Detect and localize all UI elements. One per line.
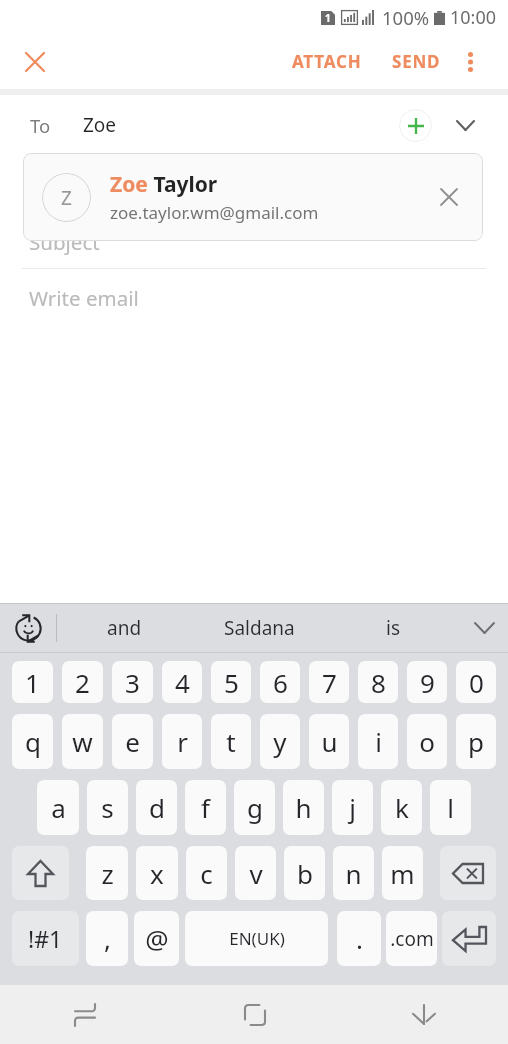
staticText: i xyxy=(375,724,382,759)
button[interactable]: p xyxy=(456,714,496,769)
button[interactable]: Expand recipients xyxy=(444,104,486,146)
button[interactable]: SEND xyxy=(383,38,450,85)
button[interactable]: 0 xyxy=(456,661,496,703)
staticText: t xyxy=(226,724,236,759)
staticText: and xyxy=(107,615,142,641)
button[interactable]: s xyxy=(87,780,128,835)
staticText: ATTACH xyxy=(292,50,362,73)
button[interactable]: w xyxy=(62,714,103,769)
button[interactable]: @ xyxy=(134,911,179,966)
button[interactable]: 4 xyxy=(162,661,202,703)
staticText: To xyxy=(30,113,51,138)
staticText: j xyxy=(349,790,356,825)
staticText: 5 xyxy=(224,665,239,700)
staticText: h xyxy=(295,790,312,825)
staticText: o xyxy=(419,724,435,759)
staticText: 0 xyxy=(469,665,484,700)
staticText: Subject xyxy=(29,228,100,256)
button[interactable]: 9 xyxy=(407,661,447,703)
button[interactable]: y xyxy=(260,714,300,769)
staticText: SEND xyxy=(392,50,441,73)
staticText: is xyxy=(386,615,401,641)
button[interactable]: Add recipient xyxy=(394,104,436,146)
staticText: .com xyxy=(390,926,434,952)
staticText: Saldana xyxy=(224,615,295,641)
button[interactable]: More options xyxy=(450,42,490,82)
button[interactable]: r xyxy=(162,714,202,769)
staticText: v xyxy=(249,856,263,891)
staticText: . xyxy=(356,921,363,956)
staticText: 6 xyxy=(273,665,288,700)
button[interactable]: q xyxy=(12,714,53,769)
button[interactable]: 1 xyxy=(12,661,53,703)
staticText: 1 xyxy=(325,11,331,25)
button[interactable]: l xyxy=(430,780,471,835)
button[interactable]: Emoji xyxy=(0,604,56,652)
staticText: 3 xyxy=(125,665,140,700)
button[interactable]: 5 xyxy=(211,661,251,703)
staticText: 10:00 xyxy=(450,5,497,30)
button[interactable]: b xyxy=(284,846,325,900)
staticText: r xyxy=(177,724,188,759)
staticText: u xyxy=(321,724,338,759)
staticText: 8 xyxy=(371,665,386,700)
button[interactable]: x xyxy=(136,846,178,900)
button[interactable]: Backspace xyxy=(440,846,496,900)
button[interactable]: v xyxy=(235,846,276,900)
button[interactable]: i xyxy=(358,714,398,769)
button[interactable]: j xyxy=(332,780,373,835)
staticText: w xyxy=(72,724,93,759)
button[interactable]: t xyxy=(211,714,251,769)
button[interactable]: , xyxy=(86,911,128,966)
staticText: 100% xyxy=(382,5,430,30)
button[interactable]: Back xyxy=(339,985,508,1044)
button[interactable]: z xyxy=(86,846,128,900)
button[interactable]: Home xyxy=(170,985,339,1044)
button[interactable]: f xyxy=(185,780,226,835)
staticText: l xyxy=(447,790,454,825)
button[interactable]: Recent apps xyxy=(0,985,170,1044)
button[interactable]: ATTACH xyxy=(283,38,371,85)
button[interactable]: . xyxy=(337,911,381,966)
button[interactable]: is xyxy=(326,604,460,652)
button[interactable]: m xyxy=(382,846,423,900)
button[interactable]: Remove recipient xyxy=(429,177,469,217)
button[interactable]: EN(UK) xyxy=(185,911,328,966)
button[interactable]: Symbols xyxy=(12,911,79,966)
staticText: q xyxy=(25,724,41,759)
staticText: 1 xyxy=(25,665,40,700)
staticText: Zoe xyxy=(83,112,117,138)
button[interactable]: Saldana xyxy=(192,604,326,652)
button[interactable]: More suggestions xyxy=(460,604,508,652)
button[interactable]: g xyxy=(234,780,275,835)
button[interactable]: n xyxy=(333,846,374,900)
button[interactable]: .com xyxy=(386,911,437,966)
staticText: 7 xyxy=(322,665,337,700)
staticText: d xyxy=(149,790,165,825)
button[interactable]: k xyxy=(381,780,422,835)
button[interactable]: d xyxy=(136,780,177,835)
button[interactable]: Shift xyxy=(12,846,69,900)
button[interactable]: c xyxy=(186,846,227,900)
button[interactable]: 7 xyxy=(309,661,349,703)
button[interactable]: Close xyxy=(10,37,59,86)
staticText: p xyxy=(468,724,484,759)
staticText: x xyxy=(150,856,164,891)
button[interactable]: 6 xyxy=(260,661,300,703)
button[interactable]: 2 xyxy=(62,661,103,703)
button[interactable]: o xyxy=(407,714,447,769)
button[interactable]: and xyxy=(57,604,192,652)
staticText: e xyxy=(125,724,140,759)
button[interactable]: u xyxy=(309,714,349,769)
staticText: @ xyxy=(145,921,169,956)
button[interactable]: Z xyxy=(23,153,483,241)
staticText: Taylor xyxy=(148,170,218,199)
button[interactable]: a xyxy=(37,780,79,835)
button[interactable]: e xyxy=(112,714,153,769)
button[interactable]: h xyxy=(283,780,324,835)
staticText: c xyxy=(200,856,213,891)
staticText: k xyxy=(395,790,409,825)
button[interactable]: Enter xyxy=(442,911,496,966)
button[interactable]: 3 xyxy=(112,661,153,703)
button[interactable]: 8 xyxy=(358,661,398,703)
